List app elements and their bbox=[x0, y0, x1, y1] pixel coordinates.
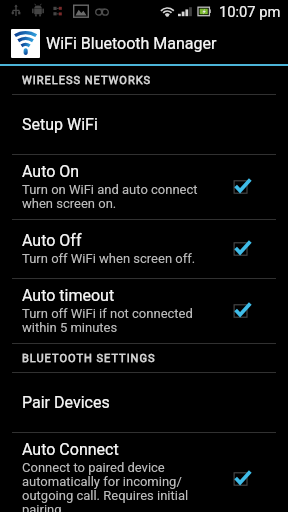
staticText: Turn off WiFi if not connected within 5 … bbox=[22, 306, 193, 335]
button[interactable]: App icon, navigate up bbox=[11, 29, 40, 58]
staticText: Turn off WiFi when screen off. bbox=[22, 251, 196, 266]
other: Auto On checkbox bbox=[218, 176, 261, 198]
staticText: Connect to paired device automatically f… bbox=[22, 460, 189, 512]
staticText: Turn on WiFi and auto connect when scree… bbox=[22, 182, 198, 211]
other: Auto timeout checkbox bbox=[218, 300, 261, 322]
staticText: Setup WiFi bbox=[22, 115, 98, 134]
button[interactable]: Auto On bbox=[0, 155, 288, 219]
staticText: WIRELESS NETWORKS bbox=[22, 74, 152, 87]
button[interactable]: Auto Off bbox=[0, 220, 288, 278]
staticText: Pair Devices bbox=[22, 393, 110, 412]
staticText: WiFi Bluetooth Manager bbox=[46, 34, 217, 53]
button[interactable]: Auto timeout bbox=[0, 279, 288, 343]
staticText: 10:07 pm bbox=[219, 3, 281, 20]
button[interactable]: Auto Connect bbox=[0, 433, 288, 512]
staticText: BLUETOOTH SETTINGS bbox=[22, 352, 156, 365]
staticText: Auto On bbox=[22, 162, 80, 181]
button[interactable]: Setup WiFi bbox=[0, 95, 288, 154]
other: Auto Off checkbox bbox=[218, 238, 261, 260]
other: Auto Connect checkbox bbox=[218, 468, 261, 490]
staticText: Auto timeout bbox=[22, 286, 115, 305]
staticText: Auto Connect bbox=[22, 440, 119, 459]
button[interactable]: Pair Devices bbox=[0, 373, 288, 432]
staticText: Auto Off bbox=[22, 231, 82, 250]
